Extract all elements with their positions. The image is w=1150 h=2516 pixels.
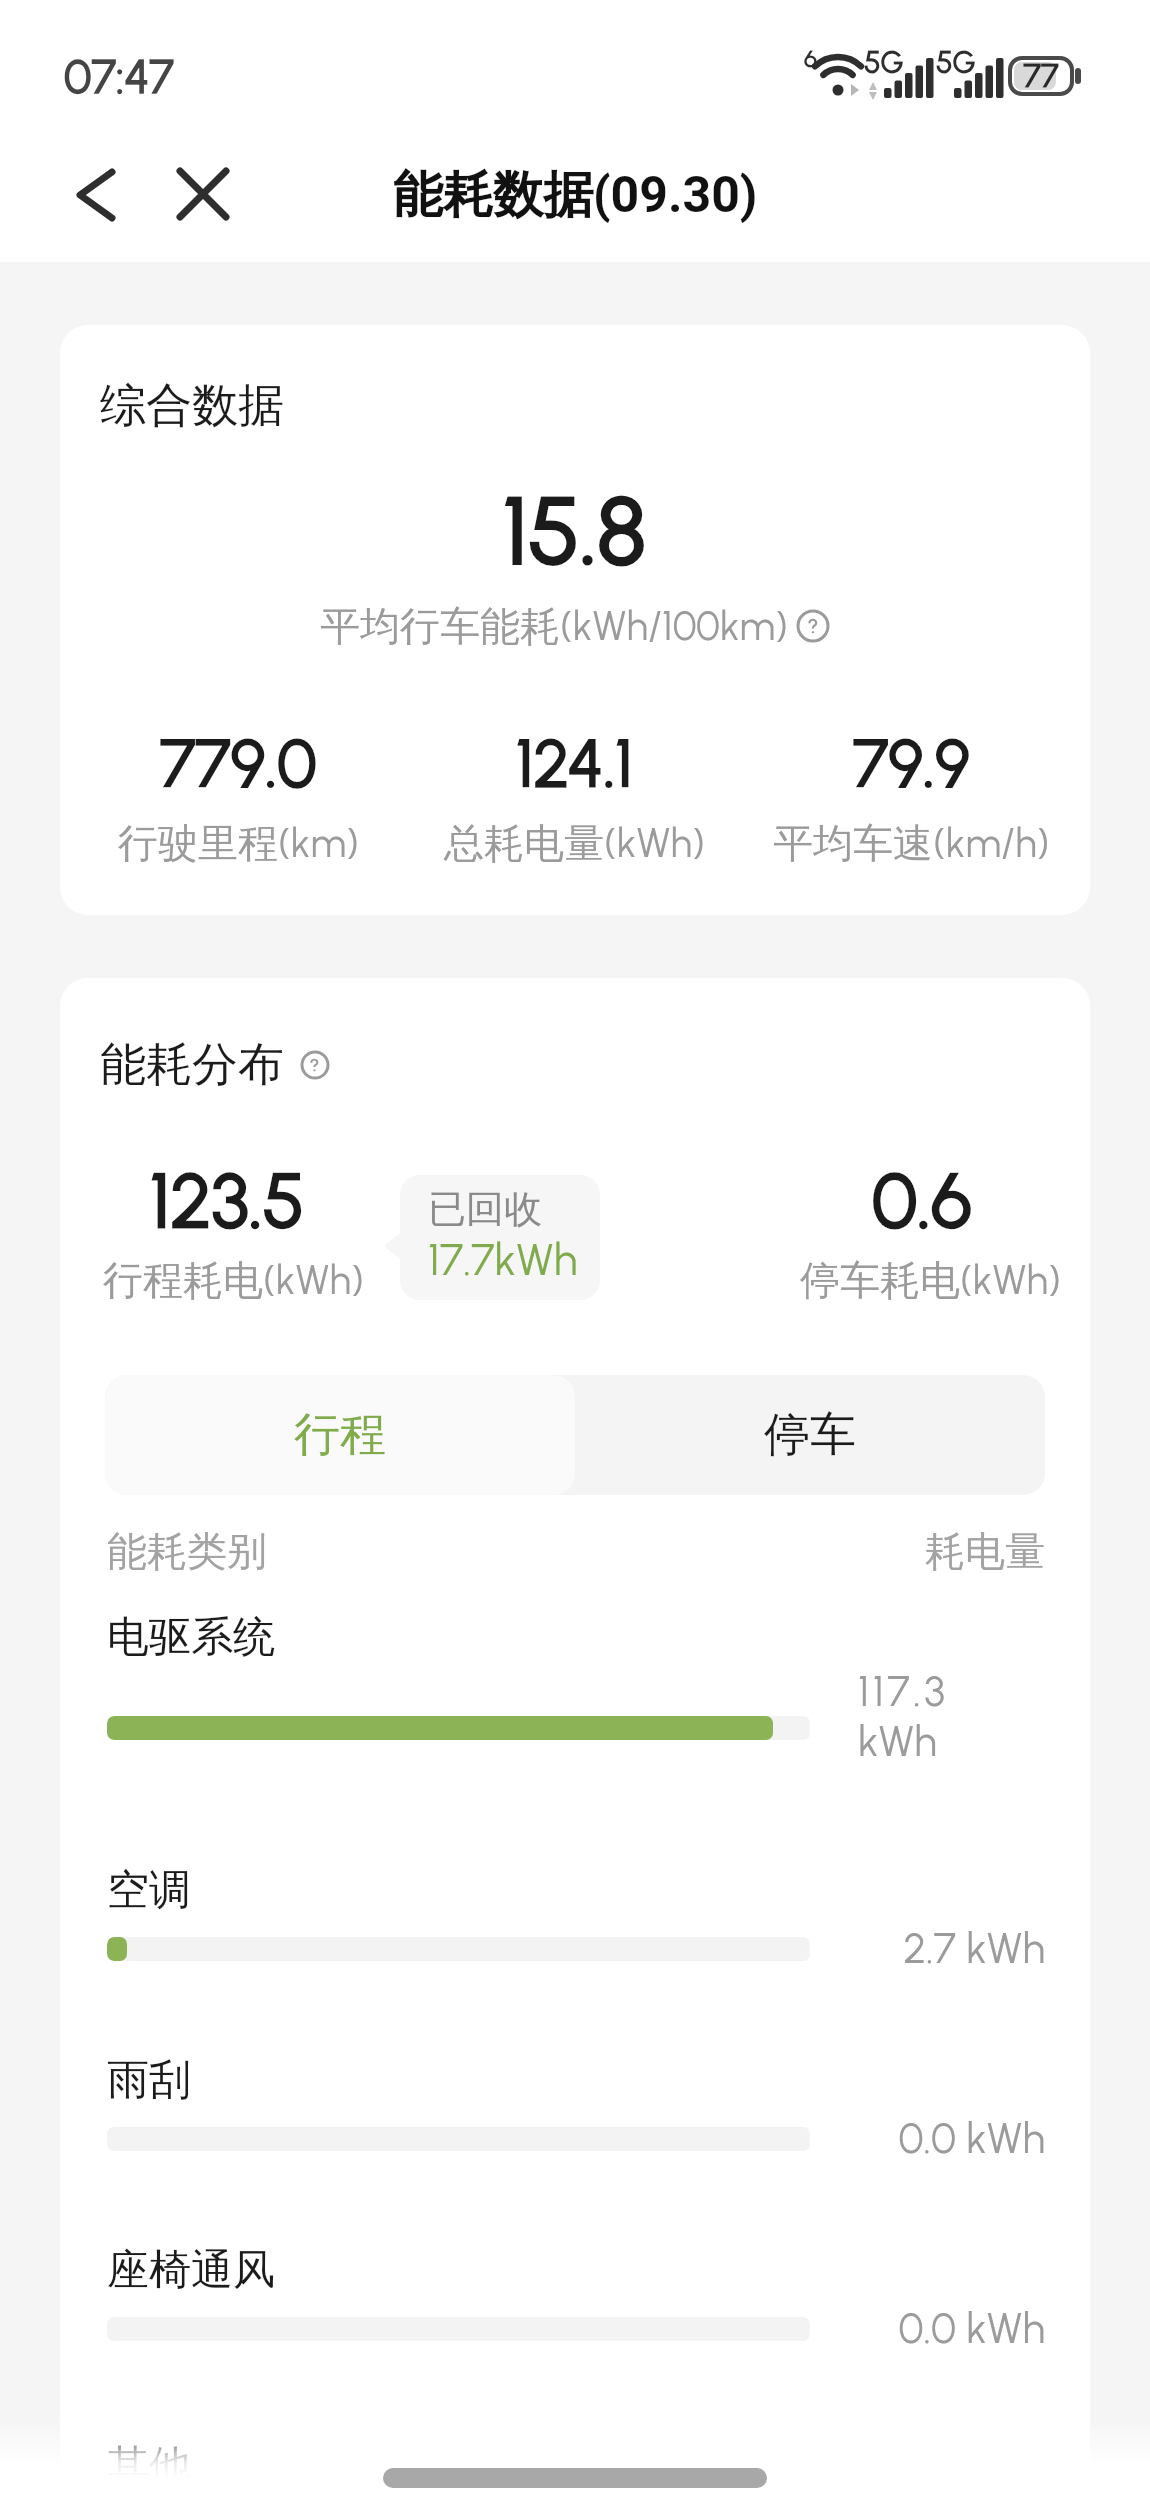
staticText: kWh [858, 1716, 937, 1766]
staticText: 能耗分布 [100, 1036, 284, 1094]
staticText: 总耗电量(kWh) [444, 818, 705, 868]
staticText: 综合数据 [100, 377, 284, 435]
staticText: ? [808, 614, 819, 638]
staticText: ? [310, 1054, 320, 1076]
button[interactable] [174, 166, 234, 226]
staticText: 6 [804, 44, 817, 73]
staticText: 行驶里程(km) [118, 818, 359, 868]
button[interactable]: ? [300, 1050, 330, 1080]
staticText: 空调 [107, 1864, 191, 1917]
staticText: 5G [936, 44, 976, 80]
staticText: 0.0 kWh [810, 2303, 1045, 2353]
button[interactable]: ? [796, 609, 830, 643]
staticText: 17.7kWh [428, 1233, 578, 1286]
staticText: 能耗数据(09.30) [393, 164, 758, 227]
staticText: 123.5 [150, 1155, 305, 1246]
staticText: 平均车速(km/h) [773, 818, 1050, 868]
staticText: 117.3 [858, 1666, 949, 1716]
button[interactable]: 行程 [105, 1375, 575, 1495]
button[interactable] [68, 164, 132, 228]
staticText: 2.7 kWh [810, 1923, 1045, 1973]
staticText: 能耗类别 [107, 1526, 267, 1576]
staticText: 停车 [764, 1406, 856, 1464]
staticText: 已回收 [428, 1185, 542, 1233]
button[interactable]: 停车 [575, 1375, 1045, 1495]
staticText: 耗电量 [925, 1526, 1045, 1576]
staticText: 77 [1010, 56, 1072, 96]
staticText: 0.6 [872, 1155, 972, 1246]
staticText: 15.8 [503, 474, 647, 587]
staticText: 座椅通风 [107, 2244, 275, 2297]
staticText: 779.0 [160, 723, 317, 802]
staticText: 雨刮 [107, 2054, 191, 2107]
staticText: 电驱系统 [107, 1611, 275, 1664]
staticText: 行程耗电(kWh) [103, 1255, 364, 1305]
staticText: 其他 [107, 2440, 191, 2493]
staticText: 平均行车能耗(kWh/100km) [320, 601, 788, 651]
staticText: 0.0 kWh [810, 2113, 1045, 2163]
staticText: 停车耗电(kWh) [800, 1255, 1061, 1305]
staticText: 行程 [294, 1406, 386, 1464]
staticText: 5G [864, 44, 904, 80]
staticText: 07:47 [64, 49, 174, 104]
staticText: 79.9 [853, 723, 970, 802]
staticText: 124.1 [516, 723, 633, 802]
